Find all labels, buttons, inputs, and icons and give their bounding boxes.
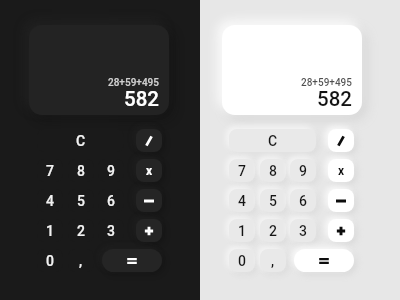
staticText: , xyxy=(271,253,275,269)
staticText: 2 xyxy=(269,223,277,239)
staticText: 9 xyxy=(299,163,307,179)
staticText: C xyxy=(76,133,86,149)
button[interactable]: minus xyxy=(328,189,354,212)
staticText: 7 xyxy=(46,163,54,179)
button[interactable]: 5 xyxy=(68,189,94,212)
staticText: , xyxy=(79,253,83,269)
button[interactable]: C xyxy=(37,129,124,152)
staticText: 582 xyxy=(124,87,159,111)
staticText: 6 xyxy=(299,193,307,209)
staticText: 4 xyxy=(46,193,54,209)
button[interactable]: 1 xyxy=(37,219,63,242)
staticText: 2 xyxy=(77,223,85,239)
button[interactable]: 9 xyxy=(290,159,316,182)
button[interactable]: 2 xyxy=(260,219,286,242)
staticText: 3 xyxy=(299,223,307,239)
button[interactable]: 9 xyxy=(98,159,124,182)
button[interactable]: divide xyxy=(328,129,354,152)
button[interactable]: 0 xyxy=(229,249,255,272)
staticText: 0 xyxy=(238,253,246,269)
button[interactable]: 8 xyxy=(68,159,94,182)
staticText: 1 xyxy=(238,223,246,239)
button[interactable]: 4 xyxy=(229,189,255,212)
button[interactable]: multiply xyxy=(328,159,354,182)
button[interactable]: plus xyxy=(328,219,354,242)
button[interactable]: , xyxy=(68,249,94,272)
button[interactable]: minus xyxy=(136,189,162,212)
button[interactable]: 7 xyxy=(37,159,63,182)
button[interactable]: divide xyxy=(136,129,162,152)
staticText: 8 xyxy=(77,163,85,179)
button[interactable]: 3 xyxy=(98,219,124,242)
button[interactable]: 0 xyxy=(37,249,63,272)
staticText: 4 xyxy=(238,193,246,209)
button[interactable]: equals xyxy=(102,249,162,272)
staticText: 28+59+495 xyxy=(301,77,352,89)
button[interactable]: 6 xyxy=(290,189,316,212)
staticText: 7 xyxy=(238,163,246,179)
button[interactable]: C xyxy=(229,129,316,152)
staticText: 5 xyxy=(269,193,277,209)
button[interactable]: equals xyxy=(294,249,354,272)
button[interactable]: 5 xyxy=(260,189,286,212)
staticText: C xyxy=(268,133,278,149)
staticText: 1 xyxy=(46,223,54,239)
button[interactable]: 3 xyxy=(290,219,316,242)
button[interactable]: multiply xyxy=(136,159,162,182)
staticText: 9 xyxy=(107,163,115,179)
staticText: 5 xyxy=(77,193,85,209)
button[interactable]: 4 xyxy=(37,189,63,212)
staticText: 28+59+495 xyxy=(108,77,159,89)
button[interactable]: 8 xyxy=(260,159,286,182)
staticText: 3 xyxy=(107,223,115,239)
button[interactable]: plus xyxy=(136,219,162,242)
staticText: 0 xyxy=(46,253,54,269)
staticText: 582 xyxy=(317,87,352,111)
staticText: 8 xyxy=(269,163,277,179)
button[interactable]: 7 xyxy=(229,159,255,182)
staticText: 6 xyxy=(107,193,115,209)
staticText: x xyxy=(338,164,345,178)
button[interactable]: 6 xyxy=(98,189,124,212)
button[interactable]: , xyxy=(260,249,286,272)
button[interactable]: 1 xyxy=(229,219,255,242)
button[interactable]: 2 xyxy=(68,219,94,242)
staticText: x xyxy=(146,164,153,178)
